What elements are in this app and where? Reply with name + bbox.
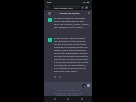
- staticText: 4G: [83, 1, 86, 4]
- button[interactable]: Tabs: [81, 6, 84, 9]
- button[interactable]: Send: [87, 84, 90, 87]
- button[interactable]: Account: [45, 5, 49, 9]
- button[interactable]: Back: [52, 96, 58, 102]
- button[interactable]: Recents: [79, 96, 85, 102]
- button[interactable]: Profile: [85, 6, 88, 9]
- button[interactable]: chat.openai.com: [51, 5, 79, 9]
- staticText: ChatGPT peut produire des informations i…: [52, 89, 84, 96]
- staticText: Je suis désolé, mais je ne peux pas répo…: [54, 37, 89, 73]
- staticText: 9:41: [47, 1, 52, 4]
- staticText: 2: [82, 6, 84, 9]
- button[interactable]: Voice input: [82, 84, 86, 88]
- button[interactable]: Home: [65, 96, 71, 102]
- staticText: Le Web du passé ou comment être un termi…: [54, 17, 89, 29]
- staticText: chat.openai.com: [54, 6, 73, 9]
- staticText: Partager des blagues: [51, 12, 88, 15]
